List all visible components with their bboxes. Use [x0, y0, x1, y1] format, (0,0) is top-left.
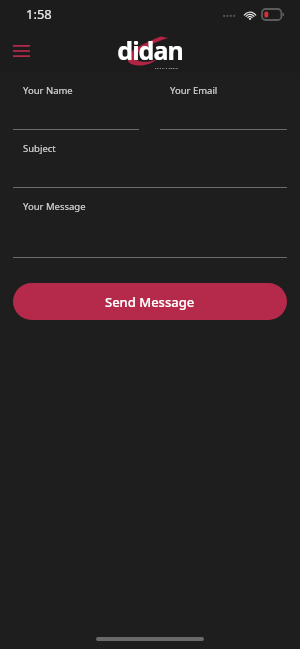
button[interactable]: Your Message — [13, 200, 287, 258]
staticText: MAGAZINE — [155, 67, 179, 69]
staticText: Your Name — [23, 84, 73, 97]
button[interactable]: Your Name — [13, 84, 139, 130]
staticText: Subject — [23, 142, 56, 155]
staticText: didan — [117, 33, 183, 67]
staticText: 1:58 — [26, 5, 52, 23]
button[interactable]: Subject — [13, 142, 287, 188]
staticText: Your Message — [23, 200, 86, 213]
button[interactable]: Your Email — [160, 84, 287, 130]
staticText: Your Email — [170, 84, 218, 97]
button[interactable]: didan magazine home — [105, 33, 195, 69]
button[interactable]: Send Message — [13, 283, 287, 320]
staticText: Send Message — [105, 293, 195, 311]
button[interactable]: Open navigation menu — [6, 36, 36, 66]
